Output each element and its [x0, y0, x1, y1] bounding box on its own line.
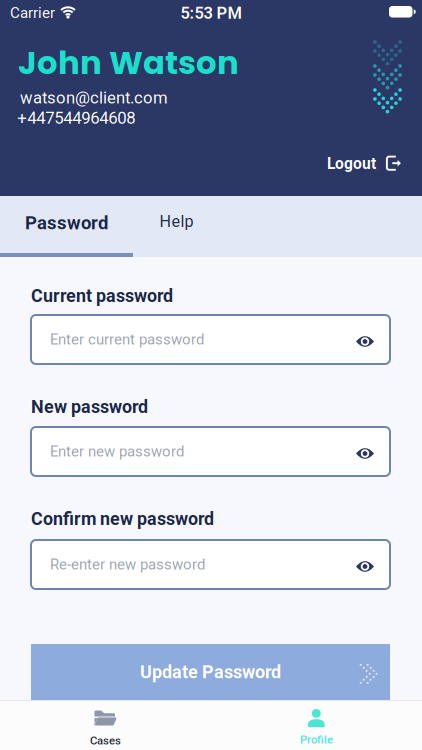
- staticText: Enter new password: [50, 443, 184, 460]
- staticText: watson@client.com: [20, 88, 168, 107]
- staticText: Logout: [327, 154, 376, 173]
- staticText: Confirm new password: [31, 508, 214, 529]
- button[interactable]: Logout: [327, 154, 402, 174]
- button[interactable]: Update Password: [31, 644, 390, 700]
- staticText: Update Password: [140, 661, 281, 683]
- staticText: 5:53 PM: [180, 3, 241, 23]
- staticText: New password: [31, 396, 148, 417]
- staticText: Enter current password: [50, 331, 204, 348]
- staticText: Password: [25, 212, 108, 234]
- staticText: Carrier: [10, 4, 55, 22]
- staticText: Profile: [300, 733, 333, 746]
- button[interactable]: Show password: [346, 320, 390, 358]
- button[interactable]: Password: [0, 212, 133, 234]
- staticText: John Watson: [18, 40, 239, 85]
- button[interactable]: Cases: [0, 708, 211, 747]
- button[interactable]: Profile: [211, 709, 422, 746]
- staticText: Current password: [31, 285, 173, 306]
- staticText: Help: [159, 212, 193, 231]
- staticText: +447544964608: [17, 108, 135, 128]
- button[interactable]: Show password: [346, 545, 390, 583]
- staticText: Cases: [90, 734, 121, 747]
- staticText: Re-enter new password: [50, 556, 205, 573]
- button[interactable]: Help: [133, 212, 220, 231]
- button[interactable]: Show password: [346, 432, 390, 470]
